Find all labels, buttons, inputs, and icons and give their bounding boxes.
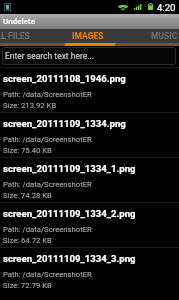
staticText: Size: 64.72 KB bbox=[3, 236, 52, 245]
staticText: screen_20111109_1334.png bbox=[3, 118, 126, 129]
button[interactable]: ALL FILES bbox=[0, 29, 49, 43]
staticText: Size: 213.92 KB bbox=[3, 101, 57, 110]
button[interactable]: screen_20111109_1334_2.png bbox=[0, 202, 179, 247]
staticText: Size: 72.79 KB bbox=[3, 281, 52, 290]
staticText: ALL FILES bbox=[0, 31, 30, 41]
staticText: Undelete bbox=[3, 17, 36, 26]
button[interactable]: screen_20111109_1334.png bbox=[0, 112, 179, 157]
staticText: Path: /data/ScreenshotER bbox=[3, 90, 92, 99]
staticText: Path: /data/ScreenshotER bbox=[3, 180, 92, 189]
staticText: Size: 74.28 KB bbox=[3, 191, 52, 200]
staticText: Size: 75.40 KB bbox=[3, 146, 52, 155]
button[interactable]: Enter search text here... bbox=[2, 47, 176, 65]
staticText: Path: /data/ScreenshotER bbox=[3, 270, 92, 279]
staticText: screen_20111109_1334_1.png bbox=[3, 163, 136, 174]
button[interactable]: MUSIC bbox=[126, 29, 179, 43]
staticText: Path: /data/ScreenshotER bbox=[3, 135, 92, 144]
button[interactable]: IMAGES bbox=[49, 29, 126, 43]
staticText: screen_20111109_1334_2.png bbox=[3, 208, 136, 219]
staticText: Path: /data/ScreenshotER bbox=[3, 225, 92, 234]
button[interactable]: screen_20111108_1946.png bbox=[0, 67, 179, 112]
staticText: IMAGES bbox=[72, 31, 104, 41]
staticText: screen_20111109_1334_3.png bbox=[3, 253, 136, 264]
staticText: 4:20 bbox=[157, 2, 176, 13]
button[interactable]: screen_20111109_1334_1.png bbox=[0, 157, 179, 202]
staticText: MUSIC bbox=[151, 31, 178, 41]
staticText: Enter search text here... bbox=[5, 51, 94, 61]
button[interactable]: screen_20111109_1334_3.png bbox=[0, 247, 179, 292]
staticText: screen_20111108_1946.png bbox=[3, 73, 126, 84]
